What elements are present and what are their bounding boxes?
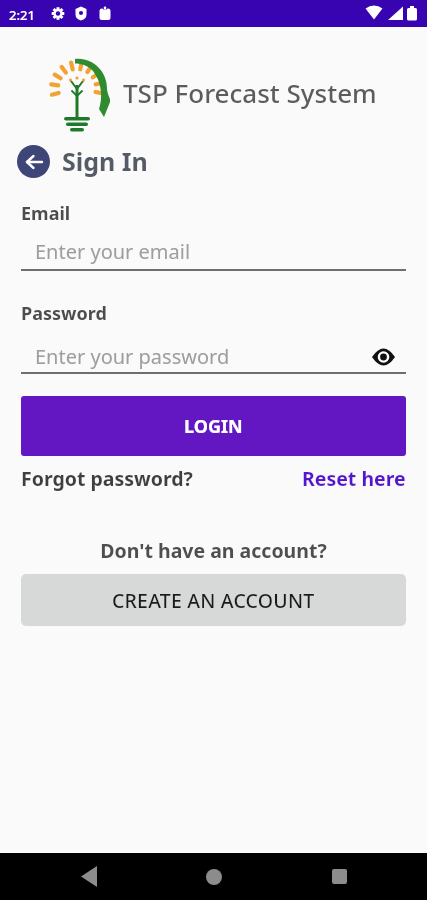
staticText: Sign In (62, 144, 148, 178)
button[interactable]: LOGIN (21, 396, 406, 456)
staticText: Password (21, 301, 107, 326)
staticText: Don't have an account? (21, 537, 406, 564)
staticText: Enter your password (35, 343, 230, 370)
button[interactable] (17, 145, 50, 178)
staticText: Enter your email (35, 238, 191, 265)
button[interactable] (190, 853, 238, 900)
staticText: LOGIN (184, 414, 243, 439)
staticText: 2:21 (9, 6, 35, 24)
staticText: TSP Forecast System (123, 75, 377, 110)
button[interactable]: CREATE AN ACCOUNT (21, 574, 406, 626)
staticText: Forgot password? (21, 465, 193, 492)
staticText: Email (21, 201, 71, 226)
button[interactable] (65, 853, 113, 900)
button[interactable] (315, 853, 363, 900)
staticText: Reset here (302, 465, 406, 492)
staticText: CREATE AN ACCOUNT (112, 587, 315, 614)
button[interactable]: Reset here (302, 465, 406, 492)
